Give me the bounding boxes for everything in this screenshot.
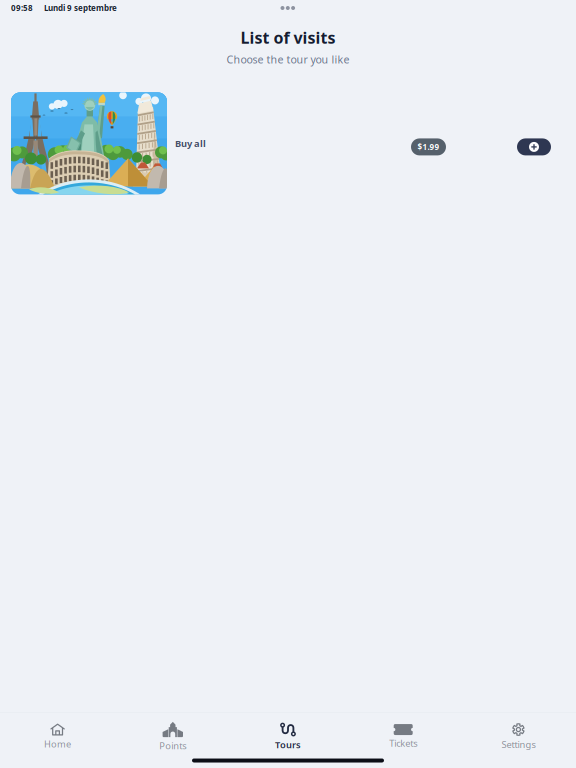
button[interactable]: Tickets <box>346 720 461 752</box>
staticText: List of visits <box>240 27 335 48</box>
staticText: Tours <box>275 739 301 751</box>
staticText: Settings <box>501 738 535 751</box>
button[interactable]: Home <box>0 719 115 753</box>
button[interactable]: Buy all <box>11 92 206 194</box>
staticText: Tickets <box>389 737 417 749</box>
staticText: Home <box>44 738 71 750</box>
staticText: Buy all <box>175 137 206 150</box>
staticText: Lundi 9 septembre <box>44 3 117 13</box>
button[interactable]: $1.99 <box>411 138 446 155</box>
button[interactable]: Tours <box>230 718 346 754</box>
button[interactable]: Settings <box>461 718 576 754</box>
staticText: Points <box>159 740 186 752</box>
staticText: $1.99 <box>417 142 439 152</box>
button[interactable]: Add all tours <box>517 138 551 155</box>
staticText: Choose the tour you like <box>226 52 349 66</box>
staticText: 09:58 <box>11 3 33 13</box>
button[interactable]: Points <box>115 717 230 755</box>
